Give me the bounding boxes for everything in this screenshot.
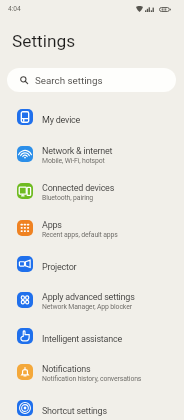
button[interactable]: Notifications — [0, 353, 184, 391]
staticText: Projector — [42, 262, 77, 273]
button[interactable]: Search settings — [7, 68, 176, 92]
staticText: Apply advanced settings — [42, 292, 135, 303]
staticText: Mobile, Wi-Fi, hotspot — [42, 157, 105, 165]
button[interactable]: Apply advanced settings — [0, 281, 184, 319]
staticText: Notification history, conversations — [42, 375, 142, 383]
staticText: Settings — [12, 31, 76, 51]
button[interactable]: Connected devices — [0, 172, 184, 210]
staticText: My device — [42, 115, 81, 126]
staticText: Notifications — [42, 364, 91, 375]
staticText: Shortcut settings — [42, 406, 107, 417]
staticText: Network & internet — [42, 146, 113, 157]
staticText: Search settings — [35, 75, 103, 86]
staticText: 4:04 — [8, 5, 21, 13]
staticText: Bluetooth, pairing — [42, 194, 94, 202]
staticText: Connected devices — [42, 183, 115, 194]
button[interactable]: Projector — [0, 247, 184, 282]
staticText: Recent apps, default apps — [42, 231, 118, 239]
staticText: Apps — [42, 220, 62, 231]
staticText: Network Manager, App blocker — [42, 303, 132, 311]
button[interactable]: Shortcut settings — [0, 391, 184, 420]
button[interactable]: My device — [0, 100, 184, 135]
button[interactable]: Apps — [0, 209, 184, 247]
button[interactable]: Network & internet — [0, 135, 184, 173]
button[interactable]: Intelligent assistance — [0, 319, 184, 354]
staticText: Intelligent assistance — [42, 334, 123, 345]
